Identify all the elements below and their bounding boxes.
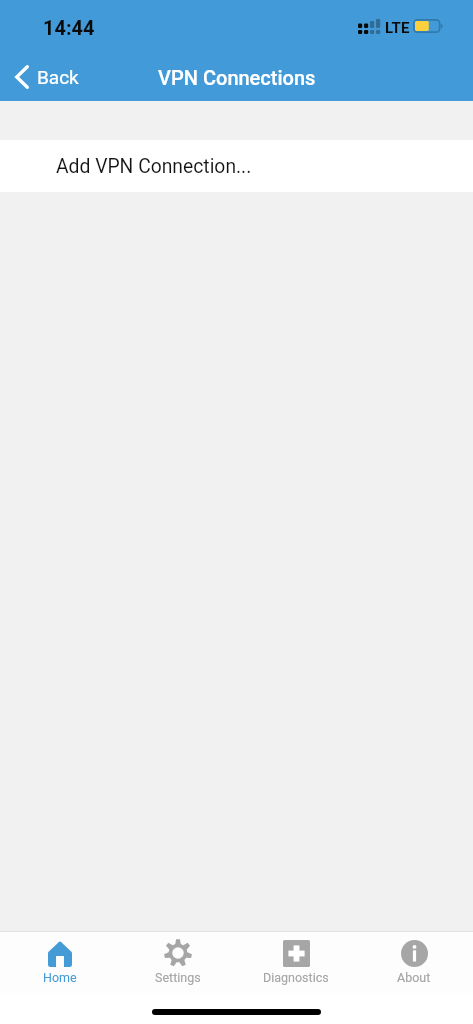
other: Home indicator <box>152 1009 321 1015</box>
button[interactable]: Back <box>13 63 81 91</box>
button[interactable]: Settings <box>119 932 237 993</box>
staticText: About <box>397 970 431 985</box>
staticText: Diagnostics <box>263 970 329 985</box>
staticText: LTE <box>385 19 410 37</box>
staticText: Back <box>37 66 79 88</box>
staticText: 14:44 <box>43 16 95 39</box>
button[interactable]: Add VPN Connection... <box>0 140 473 192</box>
button[interactable]: Diagnostics <box>237 932 355 993</box>
button[interactable]: About <box>355 932 473 993</box>
staticText: VPN Connections <box>158 66 316 89</box>
staticText: Home <box>43 970 77 985</box>
staticText: Add VPN Connection... <box>56 155 252 178</box>
staticText: Settings <box>155 970 201 985</box>
button[interactable]: Home <box>0 932 119 993</box>
